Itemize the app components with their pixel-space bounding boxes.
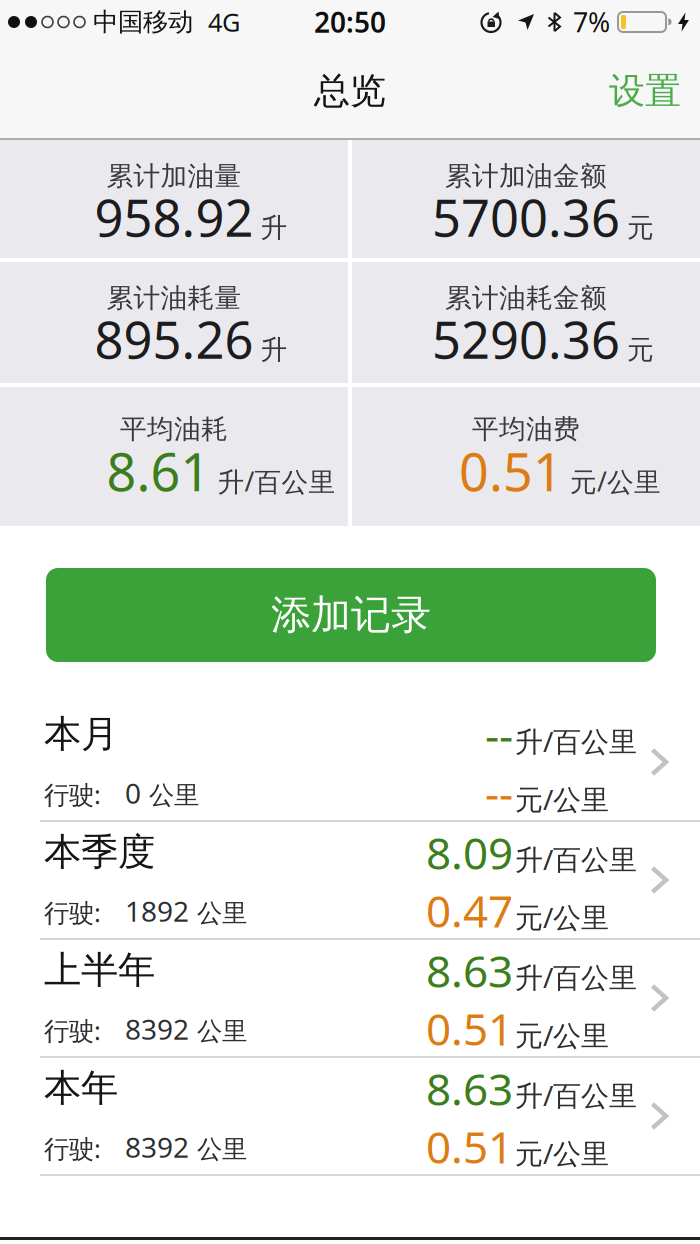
staticText: 8.63 (426, 941, 513, 1000)
staticText: 本年 (44, 1065, 118, 1111)
staticText: 总览 (314, 69, 386, 113)
staticText: 4G (208, 5, 240, 39)
staticText: 升 (260, 211, 287, 244)
staticText: 元 (627, 211, 654, 244)
staticText: 元/公里 (515, 780, 609, 818)
staticText: 升/百公里 (515, 1076, 637, 1114)
staticText: 895.26 (94, 305, 253, 373)
staticText: 7% (573, 4, 610, 40)
staticText: 元/公里 (570, 463, 661, 499)
staticText: 公里 (197, 1016, 247, 1047)
button[interactable]: 本月 (0, 704, 700, 822)
staticText: 元 (627, 333, 654, 366)
staticText: 0 (125, 774, 141, 812)
staticText: 20:50 (314, 3, 386, 41)
button[interactable]: 上半年 (0, 940, 700, 1058)
staticText: 平均油费 (472, 413, 580, 445)
staticText: 累计加油量 (106, 160, 241, 192)
staticText: 0.47 (426, 881, 513, 940)
staticText: 行驶: (44, 1014, 101, 1047)
staticText: 累计油耗金额 (445, 282, 607, 314)
staticText: 上半年 (44, 947, 155, 993)
staticText: 升/百公里 (515, 722, 637, 760)
staticText: 8392 (125, 1010, 189, 1048)
staticText: 5700.36 (432, 183, 620, 251)
staticText: -- (485, 705, 513, 764)
staticText: 累计油耗量 (106, 282, 241, 314)
staticText: 8392 (125, 1128, 189, 1166)
staticText: 本季度 (44, 829, 155, 875)
staticText: 平均油耗 (120, 413, 228, 445)
staticText: 行驶: (44, 896, 101, 929)
staticText: 8.09 (426, 823, 513, 882)
staticText: 中国移动 (93, 6, 193, 37)
staticText: 升 (260, 333, 287, 366)
staticText: 公里 (197, 898, 247, 929)
staticText: 行驶: (44, 778, 101, 811)
button[interactable]: 添加记录 (46, 568, 656, 662)
staticText: 行驶: (44, 1132, 101, 1165)
staticText: 8.63 (426, 1059, 513, 1118)
staticText: 元/公里 (515, 1016, 609, 1054)
staticText: 累计加油金额 (445, 160, 607, 192)
staticText: 添加记录 (271, 590, 431, 639)
button[interactable]: 本年 (0, 1058, 700, 1176)
staticText: 公里 (197, 1134, 247, 1165)
staticText: 5290.36 (432, 305, 620, 373)
staticText: 升/百公里 (515, 840, 637, 878)
button[interactable]: 设置 (609, 69, 700, 113)
staticText: 0.51 (426, 1117, 513, 1176)
staticText: 8.61 (106, 436, 210, 506)
staticText: 升/百公里 (217, 463, 335, 499)
button[interactable]: 本季度 (0, 822, 700, 940)
staticText: 元/公里 (515, 898, 609, 936)
staticText: 元/公里 (515, 1134, 609, 1172)
staticText: 公里 (149, 780, 199, 811)
staticText: -- (485, 763, 513, 822)
staticText: 升/百公里 (515, 958, 637, 996)
staticText: 0.51 (459, 436, 563, 506)
staticText: 本月 (44, 711, 118, 757)
staticText: 0.51 (426, 999, 513, 1058)
staticText: 958.92 (94, 183, 253, 251)
staticText: 设置 (609, 69, 681, 113)
staticText: 1892 (125, 892, 189, 930)
